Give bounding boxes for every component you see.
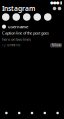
button[interactable]: Activity <box>52 5 57 12</box>
button[interactable]: Story <box>33 13 41 21</box>
button[interactable]: Tab <box>51 107 64 119</box>
button[interactable]: Tab <box>0 107 13 119</box>
button[interactable]: Follow <box>50 43 62 47</box>
button[interactable]: Tab <box>26 107 38 119</box>
button[interactable]: Story <box>44 13 51 21</box>
staticText: Caption line of the post goes <box>2 30 49 36</box>
button[interactable]: Story <box>23 13 30 21</box>
staticText: Instagram <box>2 4 35 13</box>
staticText: Follow <box>51 43 60 47</box>
button[interactable]: Tab <box>38 107 51 119</box>
staticText: username <box>8 24 28 29</box>
button[interactable]: Messages <box>57 5 62 12</box>
button[interactable]: Story <box>2 13 9 21</box>
staticText: here on two lines <box>2 37 31 42</box>
button[interactable]: Tab <box>13 107 26 119</box>
staticText: ●●● ▮ <box>50 0 62 5</box>
staticText: 12 comments <box>2 43 20 47</box>
button[interactable]: Story <box>12 13 20 21</box>
